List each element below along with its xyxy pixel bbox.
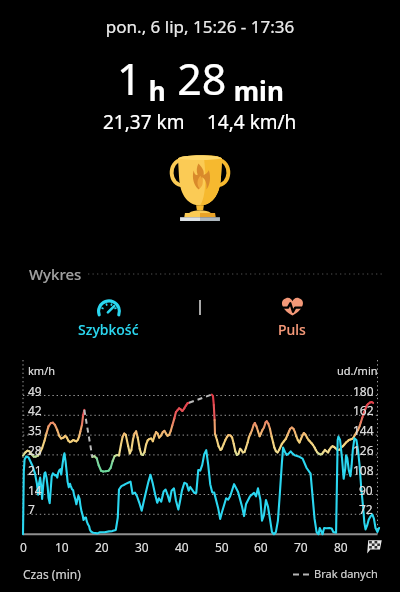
staticText: 28 — [166, 49, 227, 108]
staticText: 40 — [175, 539, 189, 555]
staticText: Szybkość — [78, 320, 139, 339]
staticText: h — [142, 73, 166, 108]
staticText: 180 — [353, 383, 374, 399]
staticText: ud./min — [337, 363, 378, 378]
staticText: 162 — [353, 402, 374, 418]
other: Meta — [365, 537, 383, 555]
staticText: 14 — [28, 482, 42, 498]
staticText: 144 — [353, 422, 374, 438]
button[interactable]: Puls — [242, 296, 342, 338]
staticText: 108 — [353, 462, 374, 478]
staticText: 35 — [28, 422, 42, 438]
staticText: 70 — [294, 539, 308, 555]
staticText: 21 — [28, 462, 42, 478]
staticText: km/h — [28, 363, 56, 378]
staticText: 50 — [215, 539, 229, 555]
staticText: 42 — [28, 402, 42, 418]
staticText: 30 — [135, 539, 149, 555]
staticText: min — [227, 73, 284, 108]
staticText: 20 — [95, 539, 109, 555]
staticText: Czas (min) — [23, 566, 81, 582]
staticText: 72 — [359, 501, 373, 517]
staticText: 0 — [20, 539, 27, 555]
staticText: 90 — [359, 482, 373, 498]
staticText: 1 — [117, 49, 142, 108]
staticText: 126 — [353, 442, 374, 458]
staticText: Puls — [278, 320, 306, 339]
staticText: 80 — [334, 539, 348, 555]
staticText: 49 — [28, 383, 42, 399]
staticText: Brak danych — [314, 566, 378, 581]
other: Szybkość — [96, 297, 122, 323]
staticText: Wykres — [29, 264, 82, 284]
staticText: 21,37 km — [103, 109, 185, 135]
staticText: 7 — [28, 501, 35, 517]
staticText: 60 — [254, 539, 268, 555]
staticText: 10 — [55, 539, 69, 555]
staticText: pon., 6 lip, 15:26 - 17:36 — [0, 15, 400, 38]
staticText: 14,4 km/h — [207, 109, 297, 135]
other: Puls — [279, 297, 306, 316]
staticText: 28 — [28, 442, 42, 458]
button[interactable]: Szybkość — [58, 296, 158, 338]
